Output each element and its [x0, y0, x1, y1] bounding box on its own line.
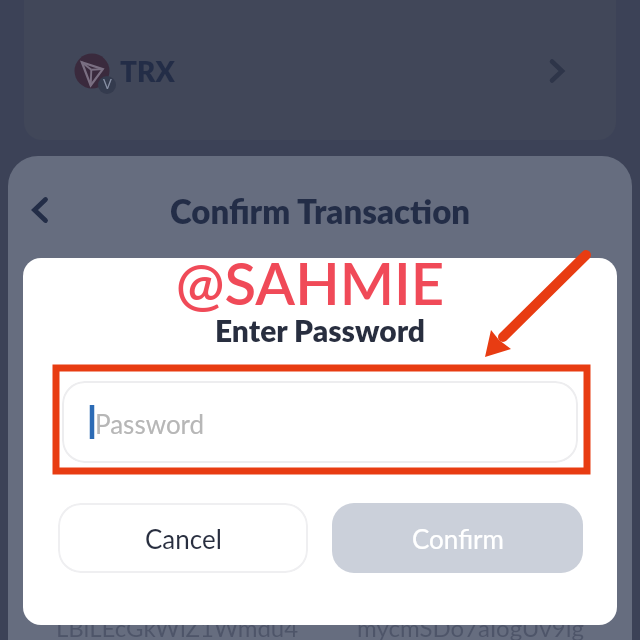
staticText: TRX [120, 54, 175, 88]
staticText: Enter Password [23, 312, 617, 348]
other: Open TRX [540, 54, 574, 88]
button[interactable]: Password [62, 381, 578, 463]
button[interactable]: V [24, 0, 616, 140]
button[interactable]: Back [12, 182, 68, 238]
staticText: Confirm Transaction [170, 191, 471, 231]
button[interactable]: Confirm [332, 503, 583, 573]
staticText: mycmSDo7aIogUv9ig [357, 613, 584, 640]
staticText: Password [95, 408, 205, 439]
staticText: Confirm [412, 523, 504, 554]
staticText: @SAHMIE [23, 258, 607, 318]
staticText: V [103, 76, 112, 92]
staticText: Cancel [145, 523, 222, 554]
button[interactable]: Cancel [58, 503, 308, 573]
staticText: LBiLEcGkWiZ1Wmdu4 [56, 613, 299, 640]
